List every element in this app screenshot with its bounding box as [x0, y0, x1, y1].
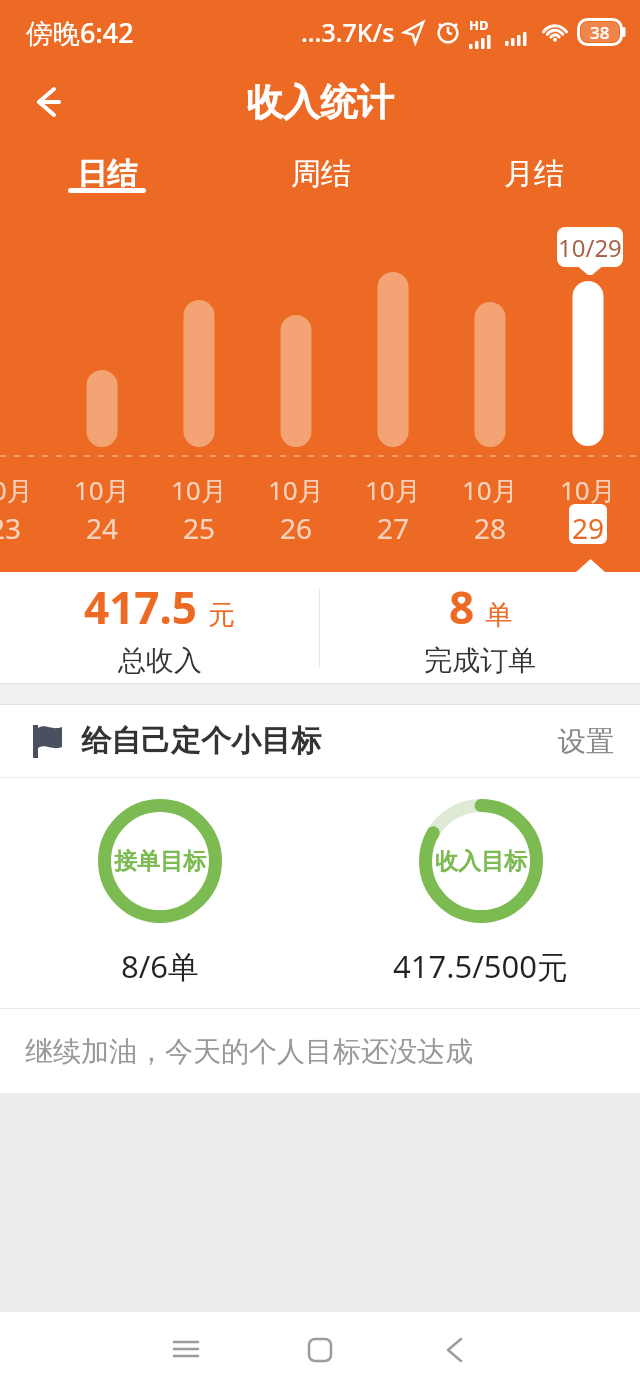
- staticText: 单: [485, 598, 512, 632]
- staticText: 417.5: [84, 577, 198, 637]
- staticText: 周结: [291, 155, 351, 193]
- staticText: 收入统计: [246, 79, 394, 126]
- button[interactable]: [387, 1312, 521, 1387]
- staticText: 10月: [74, 472, 130, 508]
- staticText: HD: [469, 16, 489, 34]
- staticText: ...3.7K/s: [301, 15, 395, 49]
- staticText: 26: [280, 509, 313, 547]
- staticText: 10月: [268, 472, 324, 508]
- staticText: 收入目标: [435, 847, 527, 876]
- staticText: 23: [0, 509, 22, 547]
- staticText: 10/29: [558, 231, 622, 264]
- button[interactable]: 8: [320, 572, 640, 683]
- button[interactable]: 接单目标: [0, 778, 320, 1008]
- staticText: 27: [377, 509, 410, 547]
- staticText: 10月: [462, 472, 518, 508]
- staticText: 10月: [171, 472, 227, 508]
- button[interactable]: 收入目标: [320, 778, 640, 1008]
- staticText: 傍晚6:42: [26, 14, 134, 51]
- button[interactable]: 417.5: [0, 572, 319, 683]
- staticText: 10月: [560, 472, 616, 508]
- button[interactable]: 周结: [214, 155, 427, 211]
- staticText: 24: [86, 509, 119, 547]
- staticText: 8: [449, 577, 475, 637]
- staticText: 继续加油，今天的个人目标还没达成: [25, 1034, 473, 1069]
- staticText: 10月: [0, 472, 33, 508]
- button[interactable]: 月结: [427, 155, 640, 211]
- button[interactable]: 日结: [0, 155, 214, 211]
- staticText: 417.5/500元: [393, 945, 568, 987]
- button[interactable]: 给自己定个小目标: [0, 705, 640, 777]
- staticText: 29: [572, 509, 605, 547]
- button[interactable]: [253, 1312, 387, 1387]
- staticText: 完成订单: [424, 643, 536, 678]
- staticText: 给自己定个小目标: [81, 722, 321, 760]
- button[interactable]: [119, 1312, 253, 1387]
- staticText: 设置: [558, 724, 614, 759]
- staticText: 总收入: [118, 643, 202, 678]
- staticText: 日结: [77, 155, 137, 193]
- button[interactable]: [24, 80, 68, 124]
- staticText: 8/6单: [121, 945, 199, 987]
- staticText: 接单目标: [114, 847, 206, 876]
- staticText: 25: [183, 509, 216, 547]
- staticText: 10月: [365, 472, 421, 508]
- staticText: 月结: [504, 155, 564, 193]
- staticText: 38: [590, 21, 610, 44]
- staticText: 元: [208, 598, 235, 632]
- staticText: 28: [474, 509, 507, 547]
